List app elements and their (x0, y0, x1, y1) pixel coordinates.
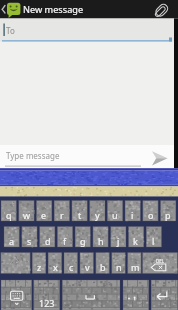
staticText: s (27, 235, 32, 247)
staticText: To (6, 25, 15, 36)
staticText: e (41, 209, 47, 221)
staticText: x (53, 261, 58, 273)
button[interactable]: d (40, 227, 55, 248)
button[interactable]: b (96, 253, 110, 274)
button[interactable]: n (112, 253, 126, 274)
staticText: b (100, 261, 106, 273)
staticText: r (60, 209, 64, 221)
button[interactable]: g (75, 227, 90, 248)
button[interactable]: DEL (143, 253, 178, 274)
staticText: i (131, 209, 134, 221)
staticText: a (9, 235, 15, 247)
button[interactable]: c (64, 253, 78, 274)
button[interactable] (1, 280, 32, 310)
staticText: h (98, 235, 104, 247)
button[interactable]: o (143, 201, 158, 222)
button[interactable] (63, 280, 121, 310)
button[interactable]: p (160, 201, 175, 222)
staticText: Type message (6, 150, 60, 161)
button[interactable]: a (4, 227, 19, 248)
staticText: d (45, 235, 51, 247)
button[interactable]: w (19, 201, 34, 222)
button[interactable]: v (80, 253, 94, 274)
button[interactable]: z (32, 253, 46, 274)
staticText: 123 (39, 297, 55, 309)
button[interactable]: t (72, 201, 87, 222)
button[interactable]: k (128, 227, 143, 248)
staticText: m (131, 261, 140, 273)
staticText: w (23, 209, 31, 221)
button[interactable]: e (36, 201, 51, 222)
button[interactable]: f (57, 227, 72, 248)
staticText: t (78, 209, 82, 221)
staticText: z (37, 261, 42, 273)
staticText: q (6, 209, 12, 221)
button[interactable]: u (107, 201, 122, 222)
staticText: o (148, 209, 154, 221)
button[interactable]: m (128, 253, 142, 274)
button[interactable]: Type message (0, 147, 145, 164)
button[interactable] (123, 280, 149, 310)
staticText: c (69, 261, 74, 273)
staticText: u (112, 209, 118, 221)
staticText: l (152, 235, 155, 247)
staticText: New message (23, 3, 84, 16)
staticText: k (133, 235, 138, 247)
staticText: DEL (156, 258, 165, 264)
button[interactable]: i (125, 201, 140, 222)
staticText: j (117, 235, 120, 247)
button[interactable]: s (22, 227, 37, 248)
button[interactable]: 123 (34, 280, 60, 310)
button[interactable]: x (48, 253, 62, 274)
button[interactable]: j (111, 227, 126, 248)
staticText: y (95, 209, 100, 221)
button[interactable]: y (90, 201, 105, 222)
button[interactable]: h (93, 227, 108, 248)
button[interactable] (151, 280, 177, 310)
staticText: p (165, 209, 171, 221)
button[interactable] (150, 0, 178, 18)
button[interactable]: r (54, 201, 69, 222)
staticText: g (80, 235, 86, 247)
button[interactable]: l (146, 227, 161, 248)
button[interactable] (0, 0, 22, 18)
staticText: f (63, 235, 67, 247)
button[interactable]: q (1, 201, 16, 222)
button[interactable]: To (0, 18, 174, 42)
staticText: n (116, 261, 122, 273)
staticText: v (85, 261, 90, 273)
button[interactable] (1, 253, 30, 274)
button[interactable] (146, 145, 174, 167)
